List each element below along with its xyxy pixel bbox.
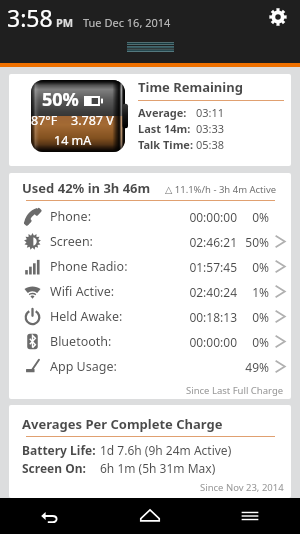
staticText: 49%	[245, 359, 269, 375]
staticText: 0%	[245, 209, 269, 225]
staticText: 00:00:00	[184, 209, 237, 225]
staticText: Time Remaining	[138, 78, 243, 96]
staticText: Since Nov 23, 2014	[200, 481, 284, 494]
staticText: Phone:	[50, 208, 91, 225]
staticText: Talk Time:	[138, 137, 194, 152]
staticText: 0%	[245, 259, 269, 275]
staticText: Phone Radio:	[50, 258, 128, 275]
staticText: 05:38	[196, 137, 225, 152]
staticText: 50%	[42, 87, 79, 112]
staticText: 1d 7.6h (9h 24m Active)	[100, 442, 232, 458]
button[interactable]: Home	[100, 498, 200, 534]
staticText: Bluetooth:	[50, 333, 112, 350]
button[interactable]: Phone:	[9, 204, 291, 229]
staticText: Tue Dec 16, 2014	[83, 15, 171, 30]
staticText: 0%	[245, 334, 269, 350]
staticText: 14 mA	[54, 132, 92, 149]
staticText: 02:46:21	[184, 234, 237, 250]
button[interactable]: App Usage:	[9, 354, 291, 379]
staticText: △ 11.1%/h - 3h 4m Active	[165, 183, 277, 196]
staticText: Last 14m:	[138, 121, 191, 136]
staticText: App Usage:	[50, 358, 117, 375]
button[interactable]: Screen:	[9, 229, 291, 254]
staticText: Since Last Full Charge	[186, 384, 284, 397]
button[interactable]: Recent apps	[200, 498, 300, 534]
staticText: 0%	[245, 309, 269, 325]
staticText: 87°F	[31, 112, 58, 129]
button[interactable]: Phone Radio:	[9, 254, 291, 279]
staticText: Held Awake:	[50, 308, 123, 325]
staticText: Screen On:	[22, 460, 86, 476]
staticText: Wifi Active:	[50, 283, 115, 300]
staticText: Averages Per Complete Charge	[22, 415, 223, 433]
button[interactable]: Settings	[267, 6, 289, 28]
staticText: 00:18:13	[184, 309, 237, 325]
staticText: 50%	[245, 234, 269, 250]
staticText: Used 42% in 3h 46m	[22, 179, 151, 197]
staticText: Battery Life:	[22, 442, 96, 458]
staticText: Average:	[138, 105, 187, 120]
staticText: 02:40:24	[184, 284, 237, 300]
staticText: 6h 1m (5h 31m Max)	[100, 460, 216, 476]
staticText: PM	[56, 15, 74, 30]
staticText: 1%	[245, 284, 269, 300]
button[interactable]: Bluetooth:	[9, 329, 291, 354]
staticText: 3.787 V	[71, 112, 114, 129]
button[interactable]: Back	[0, 498, 100, 534]
staticText: 00:00:00	[184, 334, 237, 350]
staticText: 3:58	[7, 2, 53, 33]
staticText: 01:57:45	[184, 259, 237, 275]
staticText: 03:11	[196, 105, 225, 120]
button[interactable]: Held Awake:	[9, 304, 291, 329]
staticText: 03:33	[196, 121, 225, 136]
button[interactable]: Wifi Active:	[9, 279, 291, 304]
staticText: Screen:	[50, 233, 93, 250]
